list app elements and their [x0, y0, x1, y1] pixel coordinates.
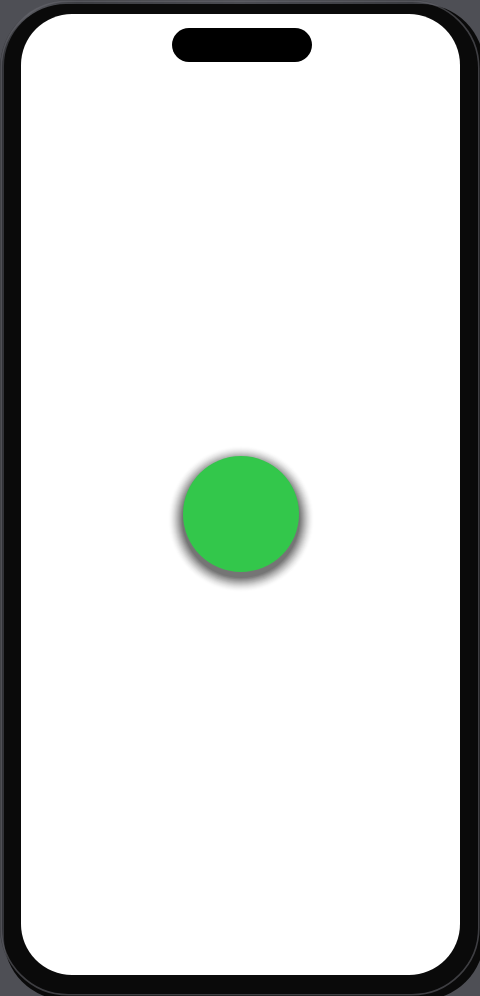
- button[interactable]: Record: [157, 430, 325, 598]
